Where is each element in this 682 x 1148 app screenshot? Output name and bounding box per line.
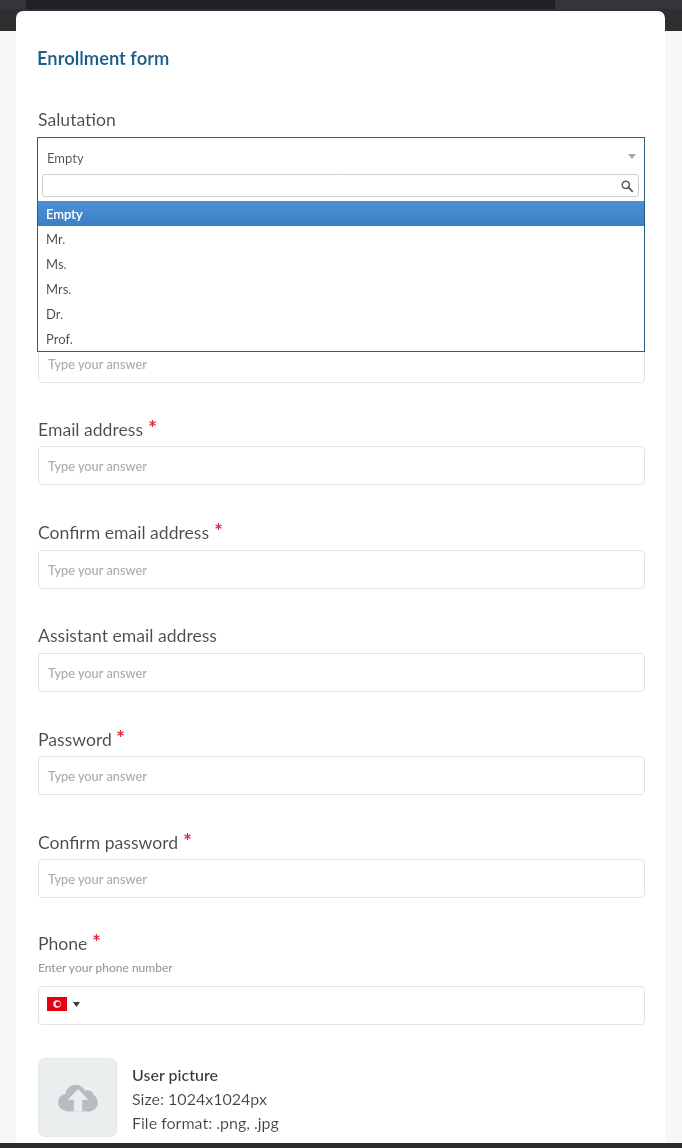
button[interactable]: Search salutation <box>42 174 639 197</box>
button[interactable]: Prof. <box>37 326 645 351</box>
staticText: Type your answer <box>48 356 147 371</box>
staticText: User picture <box>132 1065 219 1084</box>
button[interactable]: Type your answer <box>38 859 645 898</box>
button[interactable]: Mr. <box>37 226 645 251</box>
staticText: Dr. <box>46 306 64 322</box>
staticText: Enter your phone number <box>38 960 173 974</box>
staticText: Enrollment form <box>37 47 170 69</box>
staticText: Assistant email address <box>38 625 217 646</box>
button[interactable]: Ms. <box>37 251 645 276</box>
staticText: Type your answer <box>48 562 147 577</box>
staticText: Ms. <box>46 256 67 272</box>
staticText: Prof. <box>46 331 73 347</box>
button[interactable]: Empty <box>37 201 645 226</box>
staticText: Email address <box>38 419 144 440</box>
staticText: Mr. <box>46 231 66 247</box>
staticText: Type your answer <box>48 768 147 783</box>
button[interactable]: Dr. <box>37 301 645 326</box>
staticText: Type your answer <box>48 665 147 680</box>
staticText: Salutation <box>38 109 116 130</box>
staticText: Phone <box>38 933 88 954</box>
staticText: Confirm password <box>38 832 179 853</box>
button[interactable]: Upload user picture <box>38 1058 279 1137</box>
button[interactable]: Type your answer <box>38 756 645 795</box>
staticText: Type your answer <box>48 458 147 473</box>
button[interactable]: Type your answer <box>38 446 645 485</box>
button[interactable]: Empty <box>37 137 645 174</box>
staticText: Password <box>38 729 112 750</box>
staticText: Empty <box>46 206 83 222</box>
button[interactable]: Type your answer <box>38 653 645 692</box>
staticText: Confirm email address <box>38 522 210 543</box>
staticText: Empty <box>47 150 84 166</box>
staticText: Size: 1024x1024px <box>132 1089 267 1108</box>
staticText: Mrs. <box>46 281 72 297</box>
button[interactable]: Mrs. <box>37 276 645 301</box>
staticText: File format: .png, .jpg <box>132 1113 279 1132</box>
staticText: Type your answer <box>48 871 147 886</box>
button[interactable]: Type your answer <box>38 344 645 383</box>
button[interactable]: Select country calling code <box>38 986 645 1025</box>
button[interactable]: Type your answer <box>38 550 645 589</box>
